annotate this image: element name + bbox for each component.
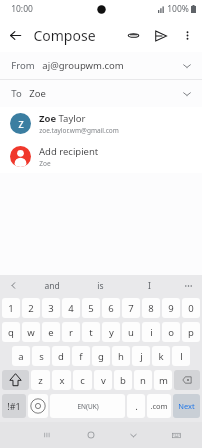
staticText: 8 bbox=[148, 302, 154, 315]
button[interactable]: o bbox=[162, 322, 180, 342]
button[interactable]: m bbox=[154, 370, 172, 390]
staticText: c bbox=[80, 374, 85, 387]
button[interactable]: t bbox=[82, 322, 100, 342]
button[interactable]: More suggestions bbox=[174, 275, 202, 296]
staticText: y bbox=[109, 326, 114, 339]
staticText: 100% bbox=[167, 3, 189, 15]
button[interactable]: Expand bbox=[175, 54, 199, 78]
button[interactable]: Attach bbox=[120, 22, 147, 49]
button[interactable]: 2 bbox=[22, 298, 40, 318]
button[interactable]: f bbox=[72, 346, 90, 366]
button[interactable]: 7 bbox=[122, 298, 140, 318]
button[interactable]: and bbox=[27, 275, 76, 296]
button[interactable]: . bbox=[127, 394, 145, 418]
staticText: z bbox=[38, 374, 43, 387]
button[interactable]: More options bbox=[174, 22, 200, 48]
staticText: and bbox=[44, 280, 60, 292]
button[interactable]: Keyboard bbox=[155, 422, 198, 448]
staticText: j bbox=[140, 350, 143, 363]
staticText: zoe.taylor.wm@gmail.com bbox=[39, 126, 119, 135]
staticText: !#1 bbox=[7, 400, 21, 412]
button[interactable]: 3 bbox=[42, 298, 60, 318]
button[interactable]: 0 bbox=[182, 298, 200, 318]
staticText: 1 bbox=[8, 302, 14, 315]
button[interactable]: q bbox=[2, 322, 20, 342]
button[interactable]: e bbox=[42, 322, 60, 342]
staticText: 9 bbox=[168, 302, 174, 315]
staticText: o bbox=[168, 326, 174, 339]
staticText: 2 bbox=[28, 302, 34, 315]
staticText: b bbox=[120, 374, 126, 387]
button[interactable]: Shift bbox=[2, 370, 29, 390]
button[interactable]: Z bbox=[0, 107, 202, 140]
button[interactable]: w bbox=[22, 322, 40, 342]
button[interactable]: Expand bbox=[175, 82, 199, 106]
staticText: aj@groupwm.com bbox=[42, 59, 124, 72]
button[interactable]: p bbox=[182, 322, 200, 342]
button[interactable]: h bbox=[112, 346, 130, 366]
staticText: v bbox=[101, 374, 106, 387]
button[interactable]: 8 bbox=[142, 298, 160, 318]
button[interactable]: d bbox=[52, 346, 70, 366]
staticText: I bbox=[148, 280, 151, 292]
staticText: 4 bbox=[68, 302, 74, 315]
button[interactable]: s bbox=[32, 346, 50, 366]
button[interactable]: k bbox=[152, 346, 170, 366]
button[interactable]: From bbox=[0, 52, 202, 79]
button[interactable]: Hide keyboard bbox=[112, 422, 155, 448]
button[interactable]: Backspace bbox=[174, 370, 200, 390]
button[interactable]: i bbox=[142, 322, 160, 342]
staticText: From bbox=[11, 59, 35, 72]
staticText: Z bbox=[18, 118, 24, 130]
button[interactable]: 4 bbox=[62, 298, 80, 318]
button[interactable]: 9 bbox=[162, 298, 180, 318]
staticText: Compose bbox=[33, 26, 96, 45]
staticText: g bbox=[98, 350, 104, 363]
button[interactable]: 5 bbox=[82, 298, 100, 318]
button[interactable]: b bbox=[114, 370, 132, 390]
staticText: u bbox=[128, 326, 134, 339]
button[interactable]: j bbox=[132, 346, 150, 366]
button[interactable]: g bbox=[92, 346, 110, 366]
button[interactable]: u bbox=[122, 322, 140, 342]
button[interactable]: a bbox=[12, 346, 30, 366]
button[interactable]: Back bbox=[0, 20, 30, 50]
button[interactable]: Next bbox=[173, 394, 200, 418]
staticText: Zoe Taylor bbox=[39, 112, 86, 125]
staticText: d bbox=[58, 350, 64, 363]
button[interactable]: r bbox=[62, 322, 80, 342]
button[interactable]: c bbox=[73, 370, 92, 390]
staticText: m bbox=[159, 374, 168, 387]
button[interactable]: n bbox=[134, 370, 152, 390]
button[interactable]: Home bbox=[69, 422, 112, 448]
staticText: a bbox=[18, 350, 24, 363]
staticText: n bbox=[140, 374, 146, 387]
button[interactable]: 1 bbox=[2, 298, 20, 318]
button[interactable]: y bbox=[102, 322, 120, 342]
button[interactable]: Previous suggestions bbox=[0, 275, 27, 296]
button[interactable]: x bbox=[52, 370, 71, 390]
button[interactable]: I bbox=[125, 275, 174, 296]
button[interactable]: v bbox=[94, 370, 112, 390]
button[interactable]: Add recipient bbox=[0, 140, 202, 173]
button[interactable]: 6 bbox=[102, 298, 120, 318]
button[interactable]: l bbox=[172, 346, 190, 366]
staticText: q bbox=[8, 326, 14, 339]
button[interactable]: EN(UK) bbox=[50, 394, 125, 418]
staticText: .com bbox=[150, 401, 168, 411]
button[interactable]: z bbox=[31, 370, 50, 390]
staticText: t bbox=[89, 326, 93, 339]
staticText: s bbox=[39, 350, 44, 363]
button[interactable]: !#1 bbox=[2, 394, 26, 418]
button[interactable]: Recents bbox=[25, 422, 69, 448]
button[interactable]: .com bbox=[147, 394, 171, 418]
staticText: Add recipient bbox=[39, 145, 99, 158]
button[interactable]: At sign bbox=[28, 394, 48, 418]
staticText: Zoe bbox=[39, 159, 51, 168]
staticText: f bbox=[79, 350, 83, 363]
button[interactable]: To bbox=[0, 80, 202, 107]
button[interactable]: is bbox=[76, 275, 125, 296]
staticText: e bbox=[48, 326, 54, 339]
staticText: . bbox=[135, 400, 138, 413]
button[interactable]: Send bbox=[147, 22, 174, 49]
